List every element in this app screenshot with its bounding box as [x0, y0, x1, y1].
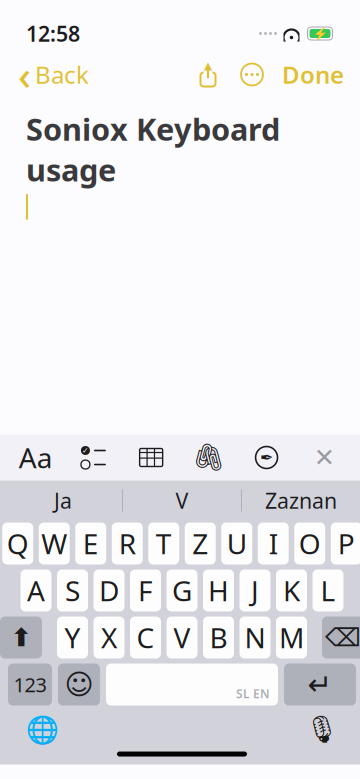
staticText: R: [119, 525, 136, 562]
button[interactable]: Share: [186, 54, 230, 94]
button[interactable]: Close keyboard: [302, 435, 346, 479]
staticText: Done: [282, 59, 344, 90]
button[interactable]: B: [203, 616, 234, 658]
staticText: W: [41, 525, 67, 562]
button[interactable]: V: [123, 480, 241, 520]
staticText: U: [227, 525, 247, 562]
button[interactable]: Done: [274, 54, 352, 94]
staticText: Back: [35, 59, 89, 90]
staticText: T: [156, 525, 172, 562]
button[interactable]: K: [276, 569, 307, 611]
staticText: K: [283, 572, 300, 609]
button[interactable]: T: [148, 522, 179, 564]
staticText: ⚡: [312, 27, 327, 40]
button[interactable]: Dictate: [300, 709, 344, 749]
staticText: V: [173, 619, 190, 656]
button[interactable]: Y: [57, 616, 88, 658]
staticText: V: [175, 486, 188, 515]
button[interactable]: Z: [185, 522, 216, 564]
button[interactable]: O: [294, 522, 325, 564]
staticText: J: [251, 572, 259, 609]
button[interactable]: Attach: [187, 435, 231, 479]
button[interactable]: ‹: [8, 54, 99, 94]
staticText: B: [209, 619, 227, 656]
button[interactable]: A: [20, 569, 51, 611]
button[interactable]: V: [166, 616, 197, 658]
staticText: H: [208, 572, 229, 609]
staticText: Y: [64, 619, 80, 656]
staticText: N: [244, 619, 265, 656]
staticText: ✓: [82, 446, 89, 455]
staticText: Aa: [19, 439, 53, 476]
staticText: ✕: [314, 443, 335, 472]
button[interactable]: Table: [129, 435, 173, 479]
staticText: ✒: [260, 448, 273, 467]
button[interactable]: N: [239, 616, 270, 658]
button[interactable]: E: [75, 522, 106, 564]
staticText: P: [338, 525, 355, 562]
staticText: O: [299, 525, 321, 562]
staticText: E: [83, 525, 99, 562]
staticText: ⌫: [325, 623, 360, 652]
staticText: 🌐: [25, 714, 58, 745]
button[interactable]: Format: [14, 435, 58, 479]
button[interactable]: More: [230, 54, 274, 94]
button[interactable]: Emoji: [58, 663, 100, 705]
button[interactable]: Delete: [322, 616, 360, 658]
button[interactable]: J: [239, 569, 270, 611]
staticText: ↵: [307, 668, 332, 701]
staticText: D: [99, 572, 119, 609]
staticText: M: [279, 619, 304, 656]
staticText: S: [65, 572, 80, 609]
staticText: ‹: [18, 48, 31, 101]
button[interactable]: C: [130, 616, 161, 658]
button[interactable]: Numbers: [8, 663, 52, 705]
staticText: Zaznan: [265, 486, 337, 515]
button[interactable]: U: [221, 522, 252, 564]
button[interactable]: L: [312, 569, 343, 611]
button[interactable]: W: [39, 522, 70, 564]
button[interactable]: Return: [284, 663, 356, 705]
button[interactable]: S: [57, 569, 88, 611]
button[interactable]: D: [93, 569, 124, 611]
button[interactable]: M: [276, 616, 307, 658]
button[interactable]: Next keyboard: [20, 709, 64, 749]
staticText: Q: [7, 525, 29, 562]
button[interactable]: R: [112, 522, 143, 564]
staticText: G: [172, 572, 192, 609]
button[interactable]: G: [166, 569, 197, 611]
button[interactable]: Q: [2, 522, 33, 564]
staticText: X: [101, 619, 117, 656]
staticText: 🎙: [305, 714, 339, 745]
button[interactable]: H: [203, 569, 234, 611]
staticText: ☺: [64, 669, 93, 700]
staticText: I: [269, 525, 278, 562]
button[interactable]: P: [331, 522, 360, 564]
staticText: C: [136, 619, 154, 656]
staticText: 123: [13, 671, 46, 698]
button[interactable]: X: [93, 616, 124, 658]
button[interactable]: Ja: [4, 480, 122, 520]
staticText: 🖇: [192, 442, 226, 473]
button[interactable]: Markup: [245, 435, 289, 479]
staticText: Ja: [54, 486, 72, 515]
button[interactable]: Space: [106, 663, 278, 705]
button[interactable]: F: [130, 569, 161, 611]
button[interactable]: I: [258, 522, 289, 564]
staticText: F: [138, 572, 153, 609]
button[interactable]: Zaznan: [242, 480, 360, 520]
staticText: ▲: [204, 59, 212, 71]
staticText: ⬆: [10, 623, 31, 652]
button[interactable]: Shift: [0, 616, 42, 658]
button[interactable]: Checklist: [71, 435, 115, 479]
staticText: Z: [192, 525, 208, 562]
staticText: SL EN: [236, 685, 270, 701]
staticText: 12:58: [26, 19, 80, 48]
staticText: L: [320, 572, 335, 609]
staticText: A: [27, 572, 45, 609]
staticText: Soniox Keyboard usage: [26, 108, 280, 190]
